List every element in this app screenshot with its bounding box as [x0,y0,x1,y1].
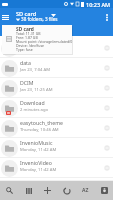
button[interactable]: Change folder [49,11,58,20]
staticText: Mount point: /storage/emulated/0 [16,39,73,44]
button[interactable]: Item options [101,122,113,134]
button[interactable]: Select [96,182,113,199]
button[interactable]: DCIM [0,78,113,98]
staticText: Device: /dev/fuse [16,43,45,48]
staticText: InvenioVideo [20,159,94,166]
staticText: Free: 1.87 GB [16,35,38,40]
button[interactable]: Change view [20,182,37,199]
staticText: SD card [16,26,34,33]
staticText: Monday, 11:42 AM [20,187,94,190]
button[interactable]: Navigation menu [0,11,11,23]
staticText: AZ [82,187,89,194]
staticText: Jan 23, 7:04 AM [20,67,94,73]
button[interactable]: Item options [101,42,113,54]
staticText: Download [20,99,94,106]
staticText: easytouch_theme [20,119,94,126]
staticText: SD card [16,10,37,18]
staticText: KGS [20,179,94,182]
staticText: data [20,59,94,66]
button[interactable]: Search [1,182,18,199]
button[interactable]: InvenioMusic [0,138,113,158]
button[interactable]: Item options [101,142,113,154]
staticText: 38 folders, 3 files [21,16,58,22]
staticText: 2 minutes ago [20,107,94,113]
staticText: Total: 11.31 GB [16,31,41,36]
button[interactable]: Item options [101,62,113,74]
button[interactable]: KGS [0,178,113,181]
staticText: Jan 23, 11:25 AM [20,87,94,93]
button[interactable]: Alarms [0,38,113,58]
staticText: Monday, 11:42 AM [20,147,94,153]
staticText: DCIM [20,79,94,86]
staticText: Alarms [20,39,94,46]
button[interactable]: InvenioVideo [0,158,113,178]
staticText: Type: fuse [16,47,33,52]
staticText: InvenioMusic [20,139,94,146]
staticText: Monday, 11:42 AM [20,167,94,173]
button[interactable]: Item options [101,82,113,94]
staticText: Thursday, 10:46 AM [20,127,94,133]
staticText: 10:23 AM [86,1,111,8]
button[interactable]: Item options [101,162,113,174]
button[interactable]: Item options [101,102,113,114]
button[interactable]: data [0,58,113,78]
button[interactable]: More options [100,11,113,24]
button[interactable]: easytouch_theme [0,118,113,138]
button[interactable]: Sort [77,182,94,199]
button[interactable]: New folder [39,182,56,199]
staticText: Jan 23, 7:04 AM [20,47,94,53]
button[interactable]: Download [0,98,113,118]
button[interactable]: Refresh [58,182,75,199]
